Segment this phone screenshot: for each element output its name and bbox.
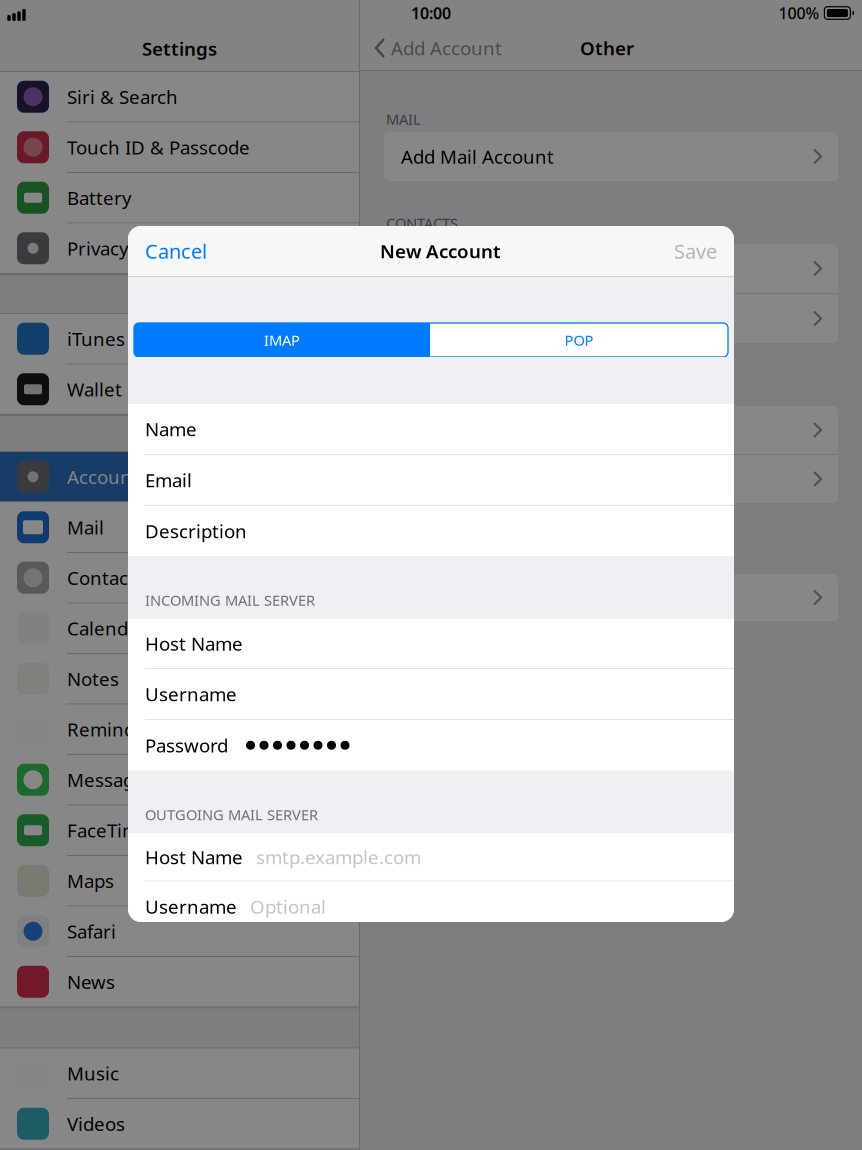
staticText: Add Mail Account: [401, 144, 554, 169]
staticText: OUTGOING MAIL SERVER: [145, 805, 318, 824]
staticText: REMINDERS: [386, 543, 468, 563]
staticText: INCOMING MAIL SERVER: [145, 590, 315, 610]
button[interactable]: Videos: [0, 1099, 359, 1149]
button[interactable]: Host Name: [128, 619, 734, 668]
button[interactable]: FaceTime: [0, 805, 359, 856]
button[interactable]: Username: [128, 881, 734, 931]
button[interactable]: News: [0, 957, 359, 1007]
button[interactable]: Add Account: [384, 455, 838, 503]
staticText: FaceTime: [67, 818, 150, 843]
button[interactable]: Notes: [0, 654, 359, 704]
staticText: Battery: [67, 185, 132, 210]
button[interactable]: Maps: [0, 856, 359, 906]
button[interactable]: Messages: [0, 755, 359, 805]
button[interactable]: Siri & Search: [0, 72, 359, 122]
button[interactable]: POP: [430, 323, 728, 357]
staticText: MAIL: [386, 109, 421, 129]
staticText: Host Name: [145, 631, 243, 656]
button[interactable]: iCloud: [384, 244, 838, 293]
staticText: Messages: [67, 767, 154, 792]
staticText: Settings: [142, 36, 217, 61]
button[interactable]: Reminders: [0, 704, 359, 755]
staticText: POP: [564, 330, 593, 350]
staticText: Optional: [250, 894, 326, 919]
button[interactable]: Safari: [0, 906, 359, 957]
staticText: Accounts & Passwords: [67, 464, 264, 489]
staticText: Host Name: [145, 845, 243, 869]
staticText: Music: [67, 1061, 119, 1086]
staticText: Other: [580, 36, 634, 60]
staticText: 100%: [778, 2, 819, 24]
button[interactable]: Music: [0, 1048, 359, 1099]
staticText: iTunes & App Store: [67, 326, 234, 351]
button[interactable]: IMAP: [134, 323, 430, 357]
staticText: Mail: [67, 515, 104, 540]
staticText: CONTACTS: [386, 213, 458, 233]
staticText: Cancel: [145, 238, 207, 264]
button[interactable]: Username: [128, 669, 734, 719]
staticText: Touch ID & Passcode: [67, 135, 250, 160]
button[interactable]: Wallet & Apple Pay: [0, 364, 359, 415]
staticText: Save: [674, 238, 717, 264]
staticText: Password: [145, 733, 228, 758]
staticText: Add Account: [401, 306, 512, 331]
button[interactable]: Description: [128, 506, 734, 556]
staticText: Email: [145, 468, 192, 492]
button[interactable]: Save: [674, 226, 734, 276]
staticText: Add Account: [391, 36, 502, 60]
button[interactable]: iCloud: [384, 406, 838, 454]
button[interactable]: iCloud: [384, 574, 838, 621]
staticText: smtp.example.com: [256, 845, 421, 869]
button[interactable]: Cancel: [128, 226, 207, 276]
staticText: Maps: [67, 868, 114, 893]
button[interactable]: Battery: [0, 173, 359, 223]
button[interactable]: Add Mail Account: [384, 132, 838, 181]
staticText: Notes: [67, 666, 119, 691]
button[interactable]: Touch ID & Passcode: [0, 122, 359, 173]
staticText: Reminders: [67, 717, 163, 742]
button[interactable]: Host Name: [128, 833, 734, 880]
staticText: IMAP: [264, 330, 300, 350]
button[interactable]: Add Account: [384, 294, 838, 343]
staticText: Username: [145, 682, 237, 706]
staticText: Wallet & Apple Pay: [67, 377, 232, 402]
button[interactable]: iTunes & App Store: [0, 314, 359, 364]
staticText: Videos: [67, 1111, 125, 1136]
staticText: Description: [145, 519, 247, 543]
staticText: Username: [145, 894, 237, 919]
button[interactable]: Add Account: [360, 36, 502, 60]
button[interactable]: Name: [128, 404, 734, 454]
staticText: 10:00: [411, 2, 451, 24]
staticText: iCloud: [401, 256, 457, 281]
staticText: Siri & Search: [67, 84, 178, 109]
button[interactable]: Privacy: [0, 223, 359, 274]
button[interactable]: Mail: [0, 502, 359, 553]
button[interactable]: Accounts & Passwords: [0, 452, 359, 502]
staticText: Contacts: [67, 565, 144, 590]
staticText: Safari: [67, 919, 116, 944]
staticText: Name: [145, 417, 197, 441]
staticText: News: [67, 969, 115, 994]
button[interactable]: Email: [128, 455, 734, 505]
button[interactable]: Contacts: [0, 553, 359, 603]
staticText: New Account: [380, 239, 501, 263]
button[interactable]: Calendar: [0, 603, 359, 654]
staticText: Calendar: [67, 616, 146, 641]
staticText: Privacy: [67, 236, 129, 261]
